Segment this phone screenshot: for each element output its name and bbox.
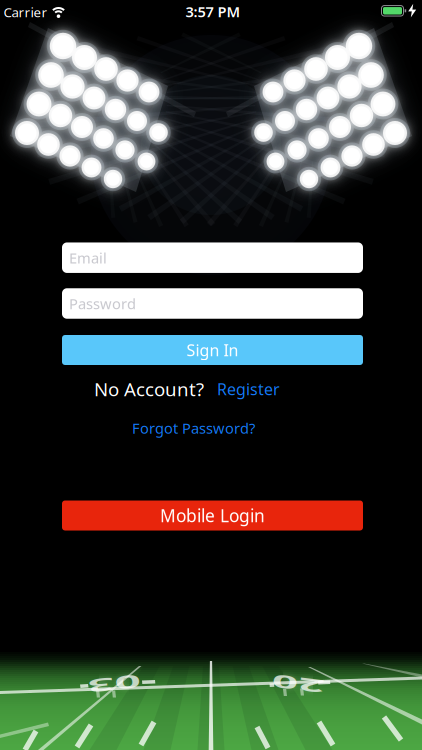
staticText: Carrier: [3, 3, 47, 21]
staticText: Register: [217, 378, 280, 400]
staticText: Sign In: [186, 339, 238, 361]
button[interactable]: Email: [62, 242, 363, 273]
staticText: Mobile Login: [160, 504, 265, 527]
staticText: 3:57 PM: [185, 2, 240, 21]
staticText: Password: [69, 294, 136, 313]
button[interactable]: Register: [217, 378, 280, 400]
staticText: No Account?: [94, 377, 204, 401]
staticText: 20: [287, 672, 309, 696]
staticText: Forgot Password?: [132, 418, 255, 438]
button[interactable]: Password: [62, 288, 363, 319]
staticText: 03: [103, 672, 125, 696]
button[interactable]: Sign In: [62, 335, 363, 365]
staticText: Email: [69, 248, 107, 267]
button[interactable]: Forgot Password?: [132, 418, 255, 438]
button[interactable]: Mobile Login: [62, 500, 363, 530]
